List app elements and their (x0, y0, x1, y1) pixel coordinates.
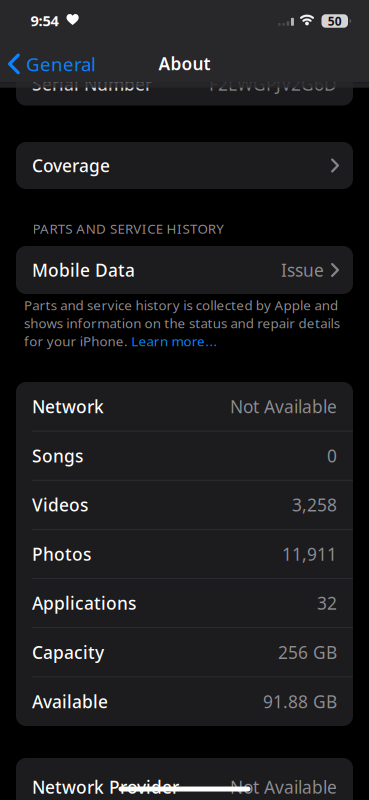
staticText: General (26, 52, 96, 76)
staticText: Issue (281, 258, 324, 281)
staticText: Parts and service history is collected b… (24, 296, 338, 314)
staticText: for your iPhone. (24, 332, 131, 350)
staticText: 3,258 (292, 493, 337, 516)
button[interactable]: Serial Number (16, 72, 353, 95)
staticText: 11,911 (282, 542, 337, 565)
staticText: 50 (328, 13, 342, 29)
button[interactable]: Songs (16, 444, 353, 467)
button[interactable]: Applications (16, 592, 353, 615)
staticText: Coverage (32, 154, 110, 177)
staticText: Videos (32, 493, 88, 516)
staticText: Not Available (230, 775, 337, 798)
staticText: 32 (317, 592, 337, 615)
staticText: 0 (327, 444, 337, 467)
button[interactable]: Available (16, 690, 353, 713)
staticText: shows information on the status and repa… (24, 314, 340, 332)
staticText: Network Provider (32, 775, 179, 798)
staticText: Learn more... (131, 332, 218, 350)
button[interactable]: Learn more... (131, 332, 218, 350)
staticText: PARTS AND SERVICE HISTORY (32, 220, 224, 237)
staticText: F2LWGPJV2G6D (209, 72, 337, 95)
button[interactable]: Network (16, 395, 353, 418)
button[interactable]: Videos (16, 493, 353, 516)
staticText: Photos (32, 542, 91, 565)
staticText: Capacity (32, 641, 104, 664)
staticText: Serial Number (32, 72, 152, 95)
button[interactable]: Capacity (16, 641, 353, 664)
button[interactable]: Network Provider (16, 775, 353, 798)
staticText: About (158, 52, 210, 75)
staticText: 91.88 GB (263, 690, 337, 713)
staticText: Network (32, 395, 104, 418)
button[interactable]: Photos (16, 542, 353, 565)
staticText: 9:54 (30, 11, 58, 30)
staticText: Not Available (230, 395, 337, 418)
button[interactable]: General (8, 52, 148, 76)
staticText: 256 GB (278, 641, 337, 664)
staticText: Applications (32, 592, 136, 615)
button[interactable]: Mobile Data (16, 246, 353, 294)
staticText: Available (32, 690, 108, 713)
staticText: Mobile Data (32, 258, 135, 281)
button[interactable]: Coverage (16, 142, 353, 189)
staticText: Songs (32, 444, 83, 467)
